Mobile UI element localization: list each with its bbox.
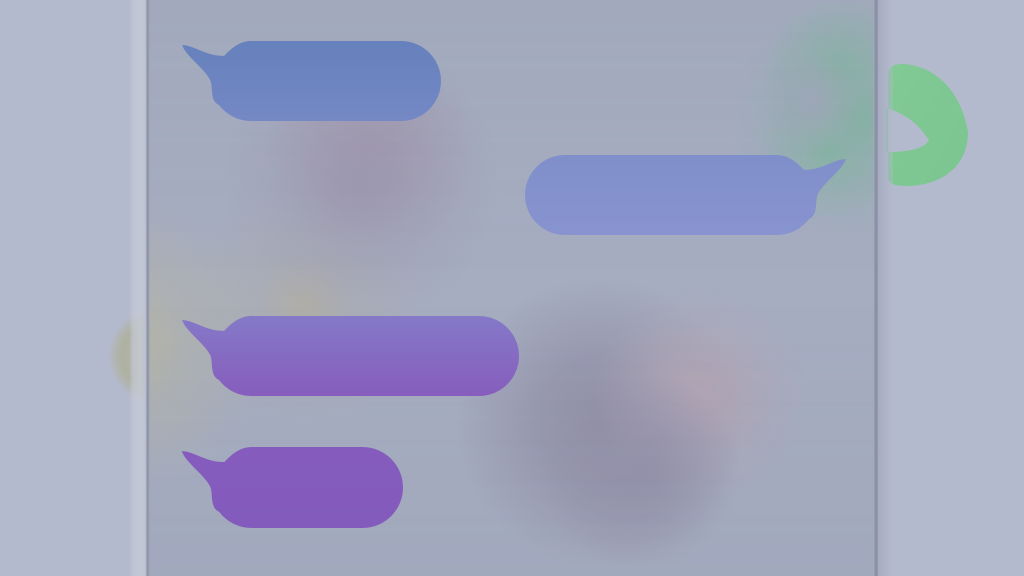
button[interactable]: Message bubble [211, 447, 403, 528]
button[interactable]: Message bubble [525, 155, 817, 235]
button[interactable]: Message bubble [211, 316, 519, 396]
button[interactable]: Message bubble [211, 41, 441, 121]
